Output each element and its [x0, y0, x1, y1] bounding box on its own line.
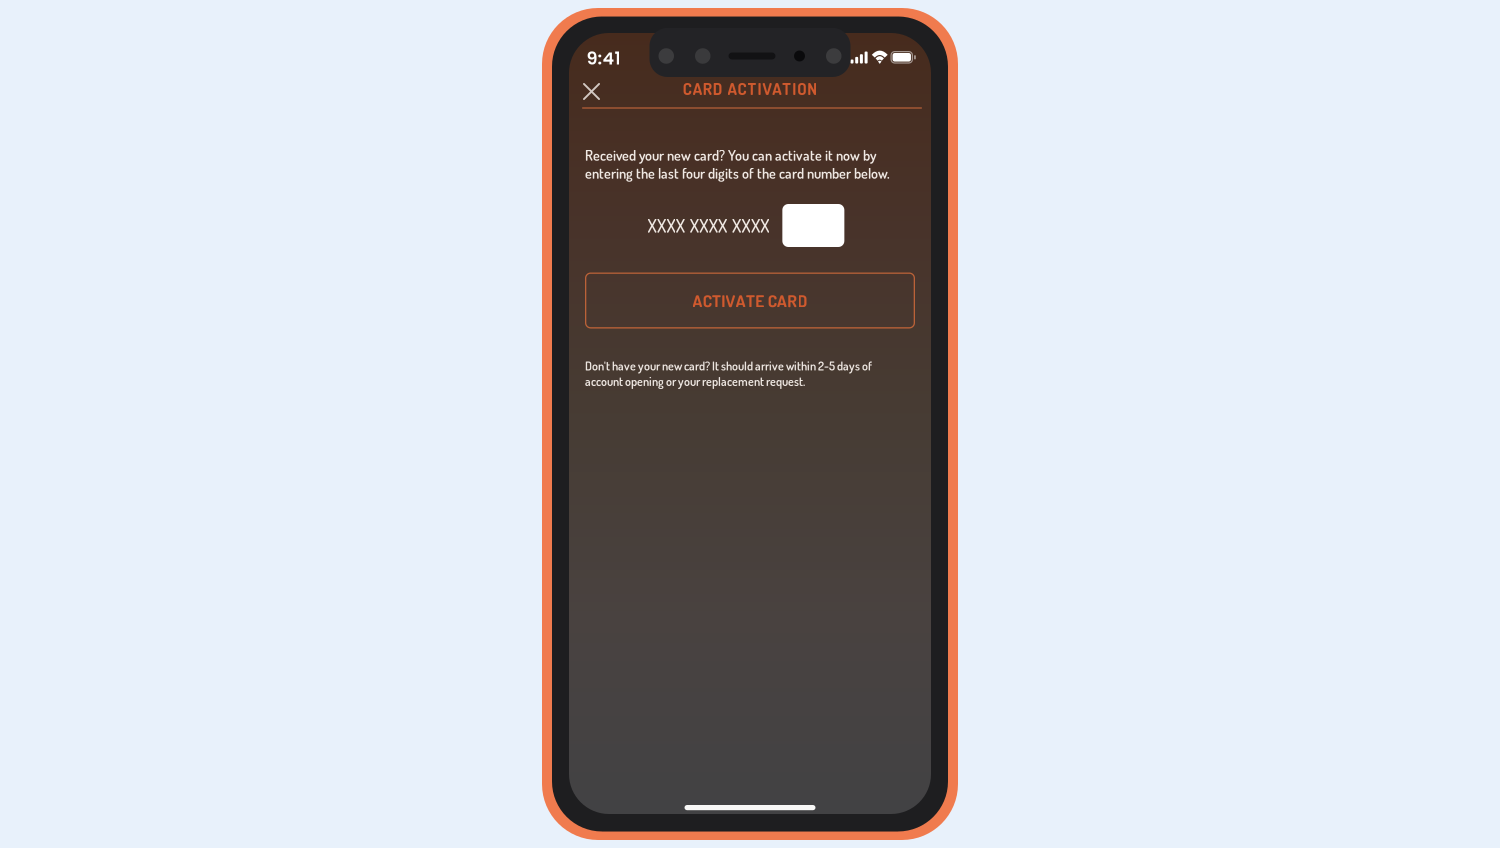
staticText: T — [746, 290, 755, 311]
staticText: I — [721, 290, 725, 311]
button[interactable]: Close — [575, 75, 608, 108]
staticText: X — [676, 214, 685, 237]
staticText: Received your new card? You can activate… — [585, 146, 890, 182]
staticText: V — [762, 78, 771, 99]
staticText: X — [732, 214, 741, 237]
staticText: T — [782, 78, 791, 99]
staticText: A — [777, 290, 787, 311]
staticText: A — [772, 78, 781, 99]
staticText: 9:41 — [586, 46, 620, 71]
staticText: X — [760, 214, 769, 237]
staticText: Don't have your new card? It should arri… — [585, 358, 872, 389]
staticText: C — [738, 78, 747, 99]
staticText: X — [699, 214, 708, 237]
staticText: C — [703, 290, 712, 311]
staticText: X — [751, 214, 760, 237]
staticText: N — [807, 78, 817, 99]
staticText: X — [647, 214, 656, 237]
button[interactable]: A — [585, 272, 915, 328]
staticText: I — [792, 78, 796, 99]
staticText: X — [690, 214, 699, 237]
staticText: T — [712, 290, 721, 311]
staticText: I — [757, 78, 761, 99]
staticText: D — [797, 290, 807, 311]
staticText: A — [692, 290, 702, 311]
staticText: E — [755, 290, 764, 311]
staticText: X — [741, 214, 750, 237]
staticText: R — [787, 290, 797, 311]
staticText: A — [736, 290, 746, 311]
staticText: A — [693, 78, 702, 99]
staticText: X — [718, 214, 727, 237]
staticText: X — [709, 214, 718, 237]
staticText: C — [683, 78, 692, 99]
staticText: X — [657, 214, 666, 237]
staticText: T — [747, 78, 756, 99]
staticText: C — [768, 290, 777, 311]
staticText: D — [713, 78, 723, 99]
staticText: V — [725, 290, 735, 311]
staticText: R — [703, 78, 712, 99]
staticText: X — [666, 214, 675, 237]
staticText: A — [728, 78, 737, 99]
staticText: O — [797, 78, 806, 99]
